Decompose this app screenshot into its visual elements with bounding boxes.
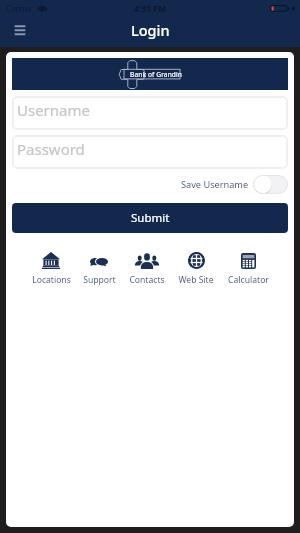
staticText: Calculator — [228, 274, 269, 286]
staticText: Web Site — [178, 274, 214, 286]
button[interactable]: Submit — [12, 203, 288, 233]
staticText: Contacts — [129, 274, 165, 286]
button[interactable]: Username — [12, 96, 288, 130]
button[interactable]: Menu — [8, 20, 32, 40]
button[interactable]: Save Username toggle — [253, 175, 288, 194]
staticText: 4:31 PM — [134, 3, 167, 14]
button[interactable]: Support — [73, 252, 125, 286]
staticText: Username — [17, 100, 90, 120]
staticText: Save Username — [181, 178, 249, 191]
staticText: Submit — [131, 210, 170, 226]
staticText: Locations — [32, 274, 71, 286]
staticText: Bank of Grandin — [130, 70, 183, 79]
staticText: Login — [131, 20, 170, 40]
button[interactable]: Password — [12, 135, 288, 169]
staticText: Password — [17, 139, 85, 159]
button[interactable]: Calculator — [222, 252, 274, 286]
button[interactable]: Locations — [25, 252, 77, 286]
button[interactable]: Contacts — [121, 252, 173, 286]
staticText: Support — [83, 274, 116, 286]
button[interactable]: Web Site — [170, 252, 222, 286]
staticText: Carrier — [6, 3, 33, 14]
